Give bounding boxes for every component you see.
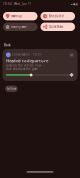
staticText: Warm up bbox=[11, 14, 22, 18]
staticText: Scheduled bbox=[49, 14, 64, 18]
button[interactable]: Warm up bbox=[3, 12, 37, 20]
button[interactable]: Quick Share bbox=[40, 23, 75, 31]
button[interactable]: Follow bbox=[5, 85, 18, 92]
staticText: 10:54 Wed, Jun 11 bbox=[3, 2, 32, 6]
button[interactable]: Dismiss bbox=[69, 52, 74, 58]
staticText: Quick Share bbox=[49, 25, 64, 28]
staticText: Follow bbox=[7, 87, 16, 90]
staticText: Headed to departure bbox=[6, 58, 48, 63]
staticText: × bbox=[71, 52, 73, 58]
button[interactable]: Battery Saver bbox=[3, 23, 37, 31]
staticText: due shortly at the gate bbox=[6, 67, 38, 71]
staticText: Conversation · 14:07 bbox=[12, 53, 42, 56]
staticText: Loading the vehicle now bbox=[6, 64, 41, 67]
staticText: Back bbox=[4, 43, 11, 47]
staticText: ▴ ● ▮ bbox=[71, 2, 77, 5]
staticText: Battery Saver bbox=[11, 25, 27, 28]
button[interactable]: Scheduled bbox=[40, 12, 75, 20]
